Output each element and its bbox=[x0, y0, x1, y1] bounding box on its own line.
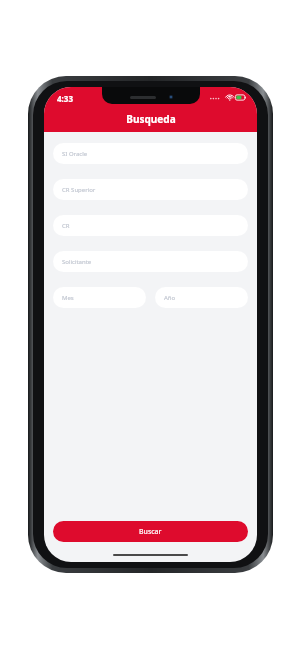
button[interactable]: Buscar bbox=[53, 521, 248, 542]
staticText: Busqueda bbox=[126, 112, 176, 126]
button[interactable]: CR Superior bbox=[53, 179, 248, 200]
staticText: Mes bbox=[62, 294, 74, 302]
staticText: Solicitante bbox=[62, 258, 92, 266]
staticText: 4:33 bbox=[57, 93, 73, 104]
button[interactable]: Mes bbox=[53, 287, 146, 308]
staticText: Buscar bbox=[139, 527, 162, 537]
staticText: Año bbox=[164, 294, 176, 302]
staticText: SI Oracle bbox=[62, 150, 88, 158]
button[interactable]: Año bbox=[155, 287, 248, 308]
staticText: CR Superior bbox=[62, 186, 96, 194]
button[interactable]: CR bbox=[53, 215, 248, 236]
staticText: CR bbox=[62, 222, 70, 230]
button[interactable]: Solicitante bbox=[53, 251, 248, 272]
button[interactable]: SI Oracle bbox=[53, 143, 248, 164]
